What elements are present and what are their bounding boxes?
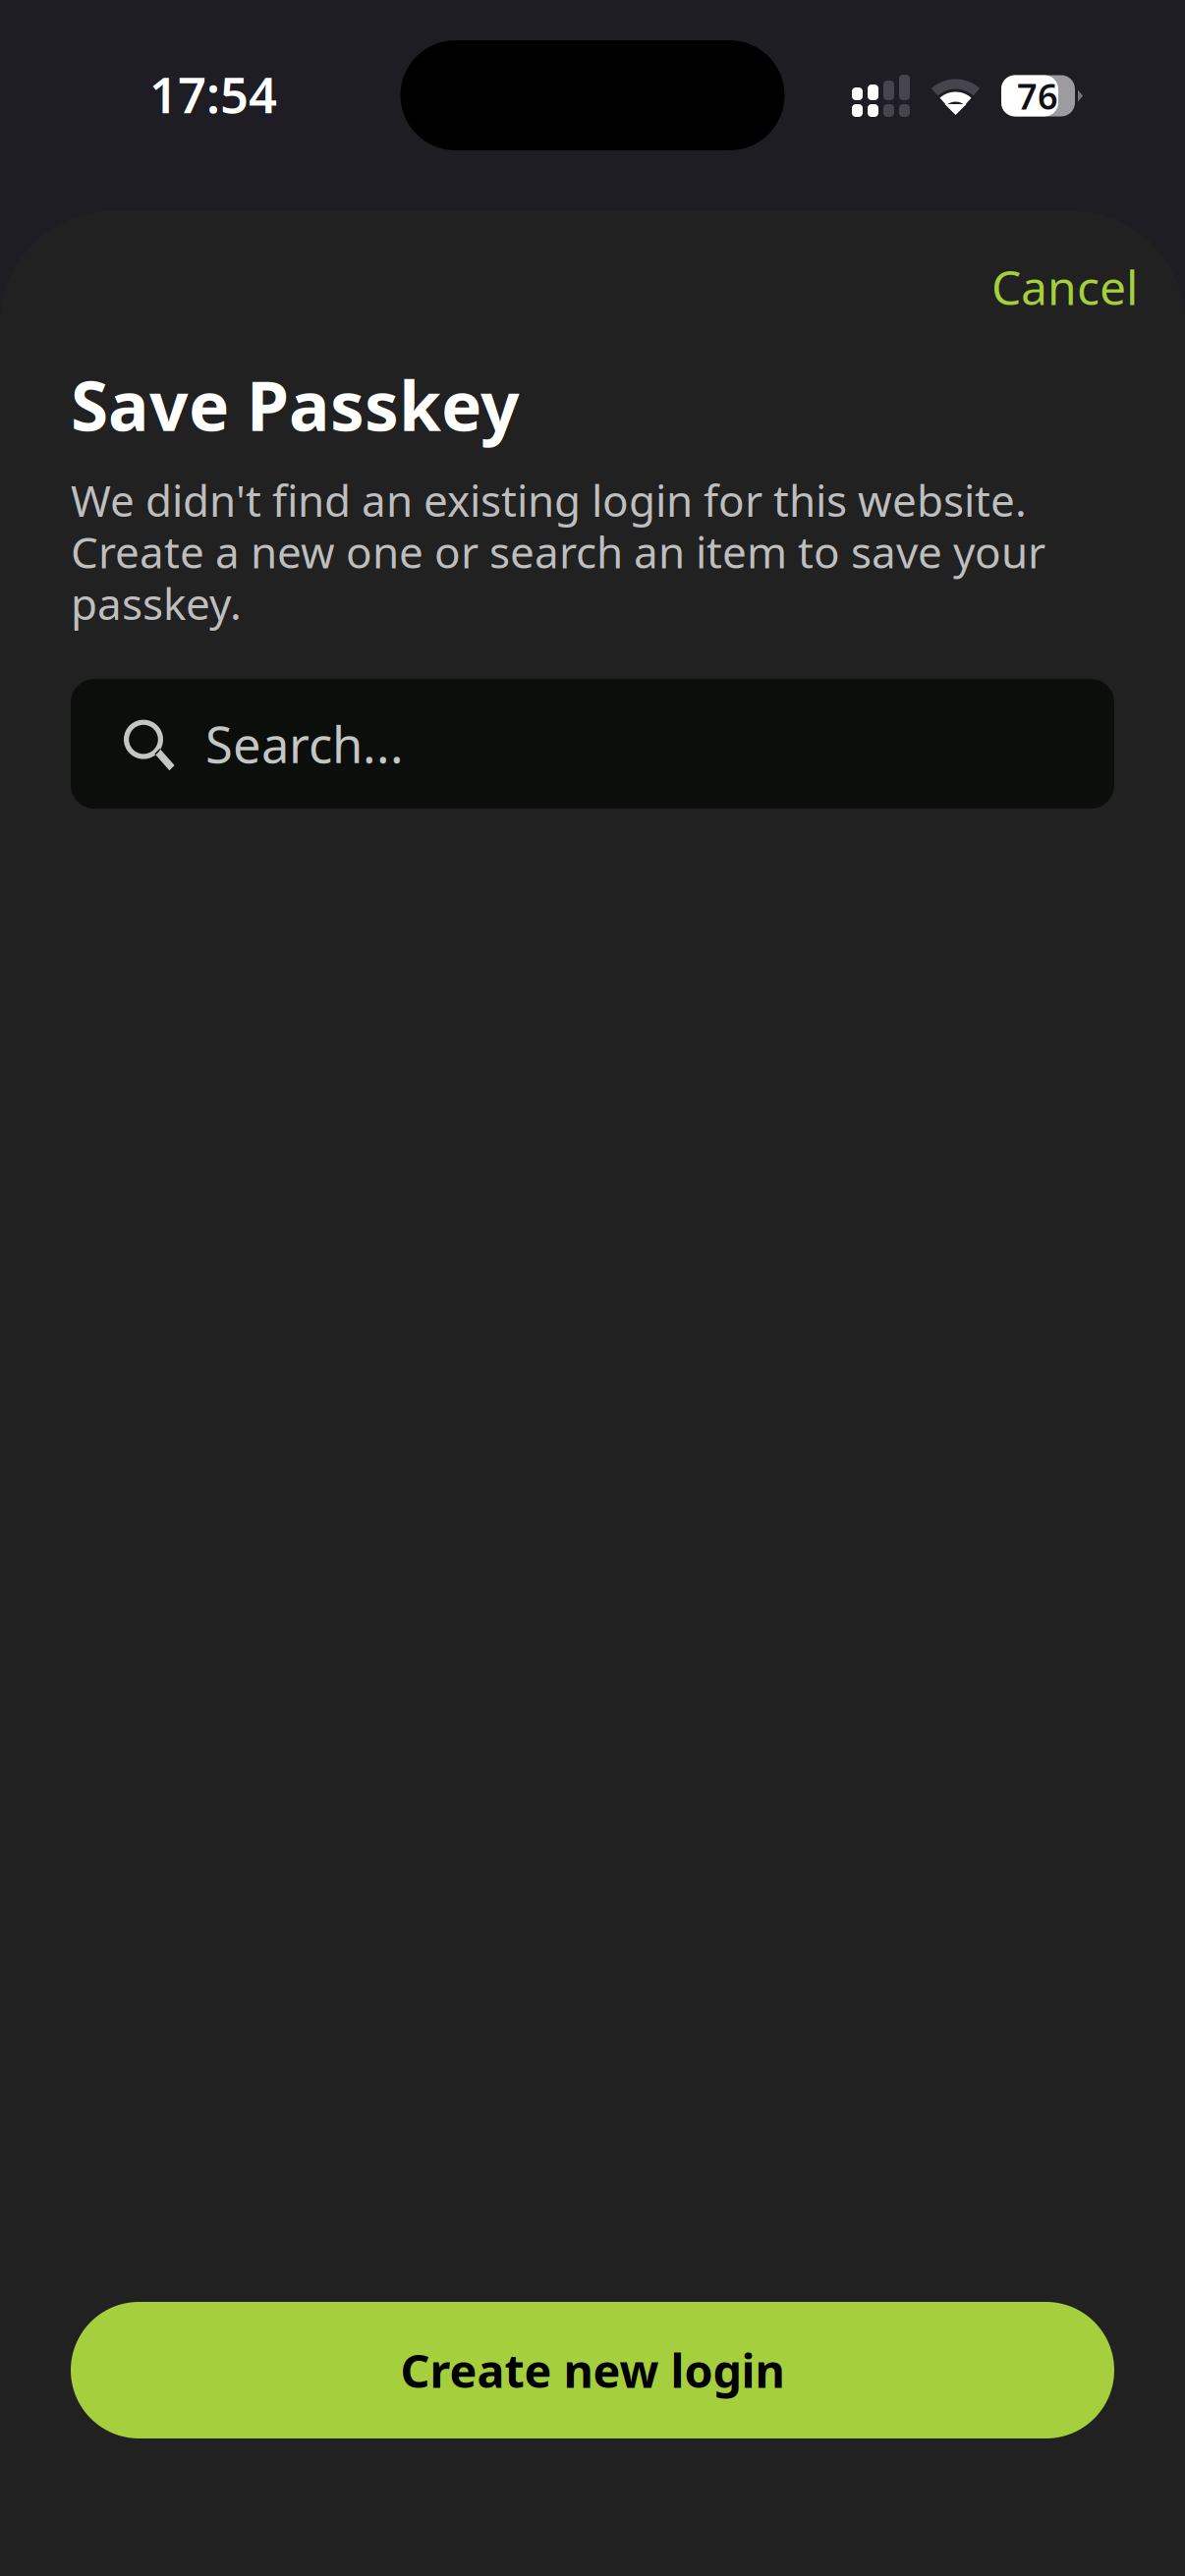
button[interactable]: Cancel bbox=[970, 238, 1159, 336]
staticText: We didn't find an existing login for thi… bbox=[71, 471, 1045, 632]
staticText: Create new login bbox=[400, 2340, 785, 2401]
staticText: Cancel bbox=[991, 255, 1138, 318]
staticText: 76 bbox=[1017, 72, 1058, 119]
button[interactable]: Create new login bbox=[71, 2302, 1114, 2438]
staticText: Search... bbox=[205, 711, 404, 777]
staticText: 17:54 bbox=[149, 61, 277, 127]
staticText: Save Passkey bbox=[71, 359, 520, 450]
button[interactable]: Search... bbox=[71, 679, 1114, 809]
